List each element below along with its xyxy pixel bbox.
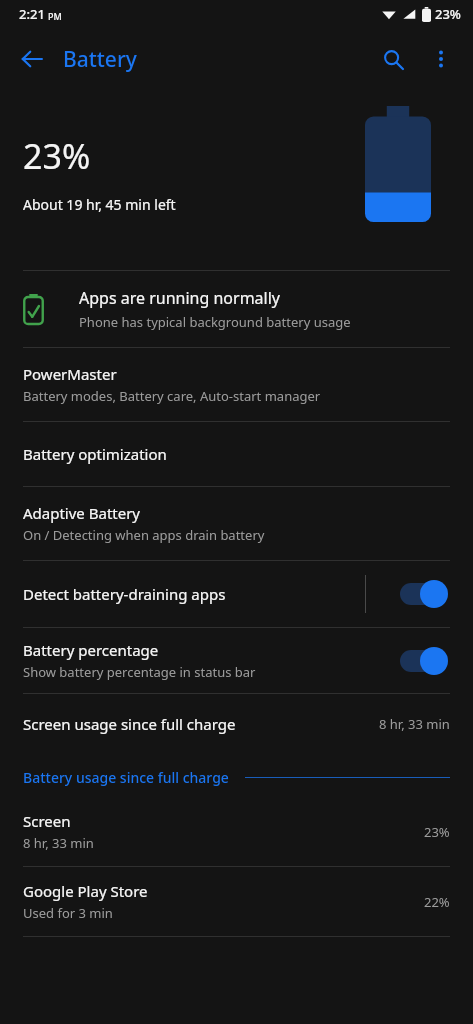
staticText: Battery optimization <box>23 444 167 464</box>
button[interactable]: Screen <box>0 797 473 866</box>
staticText: Screen <box>23 811 71 831</box>
staticText: Battery <box>63 45 137 74</box>
staticText: PowerMaster <box>23 364 117 384</box>
button[interactable]: PowerMaster <box>0 348 473 421</box>
staticText: Show battery percentage in status bar <box>23 663 256 681</box>
button[interactable]: Adaptive Battery <box>0 487 473 560</box>
button[interactable]: More options <box>419 37 463 81</box>
staticText: Screen usage since full charge <box>23 714 236 734</box>
button[interactable]: Google Play Store <box>0 867 473 936</box>
staticText: Phone has typical background battery usa… <box>79 313 351 331</box>
staticText: 8 hr, 33 min <box>379 715 450 733</box>
button[interactable]: Search <box>371 37 415 81</box>
staticText: Battery percentage <box>23 640 159 660</box>
staticText: On / Detecting when apps drain battery <box>23 526 265 544</box>
staticText: 23% <box>23 133 91 179</box>
staticText: 2:21 <box>19 5 45 23</box>
staticText: Apps are running normally <box>79 287 280 309</box>
button[interactable]: Battery optimization <box>0 422 473 486</box>
staticText: About 19 hr, 45 min left <box>23 195 176 214</box>
staticText: Adaptive Battery <box>23 503 141 523</box>
staticText: Battery modes, Battery care, Auto-start … <box>23 387 321 405</box>
button[interactable]: Detect battery-draining apps <box>0 561 473 627</box>
button[interactable]: Battery percentage <box>0 628 473 693</box>
staticText: Used for 3 min <box>23 904 113 922</box>
staticText: 8 hr, 33 min <box>23 834 94 852</box>
button[interactable]: Screen usage since full charge <box>0 694 473 754</box>
button[interactable]: Back <box>10 37 54 81</box>
staticText: Detect battery-draining apps <box>23 584 226 604</box>
staticText: 23% <box>424 823 450 841</box>
staticText: Battery usage since full charge <box>23 768 229 787</box>
button[interactable]: Apps are running normally <box>0 271 473 347</box>
staticText: Google Play Store <box>23 881 148 901</box>
staticText: 22% <box>424 893 450 911</box>
staticText: PM <box>48 10 62 22</box>
staticText: 23% <box>435 5 461 23</box>
